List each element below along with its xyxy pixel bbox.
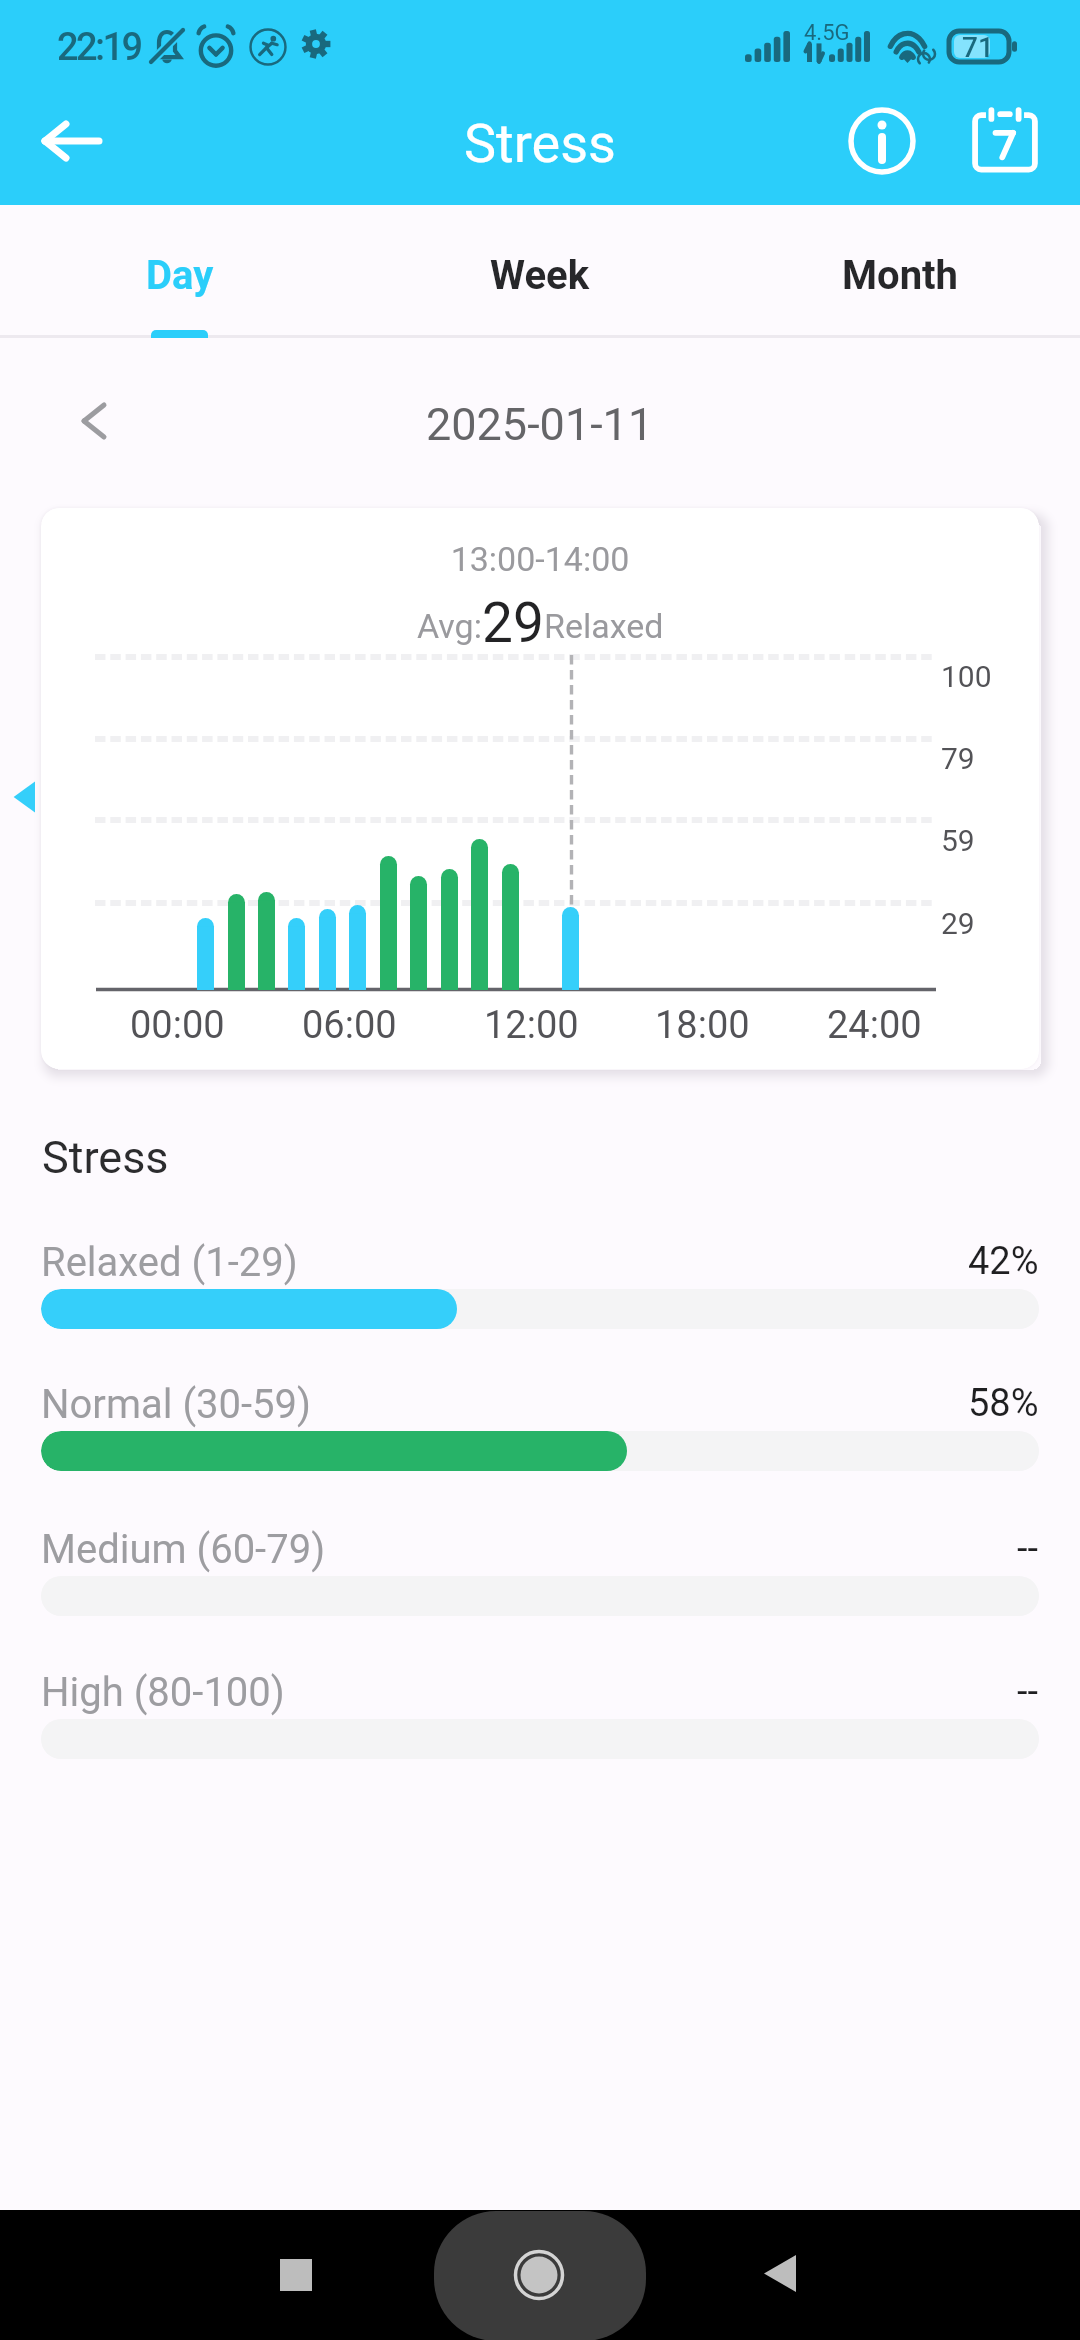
staticText: 18:00 [655,1003,750,1048]
staticText: Stress [464,112,616,175]
staticText: Day [146,252,214,299]
staticText: 29 [482,591,544,655]
staticText: Relaxed (1-29) [41,1239,968,1286]
button[interactable]: Normal (30-59) [41,1381,1039,1471]
button[interactable]: Medium (60-79) [41,1526,1039,1616]
staticText: 13:00-14:00 [41,539,1039,579]
staticText: -- [1017,1526,1039,1571]
staticText: Week [490,252,590,299]
staticText: High (80-100) [41,1669,1017,1716]
staticText: Relaxed [544,606,664,646]
staticText: 58% [968,1381,1039,1426]
button[interactable]: Month [720,205,1080,338]
staticText: 79 [941,741,975,776]
staticText: 59 [941,823,975,858]
button[interactable]: Recents [264,2243,328,2307]
staticText: Month [842,252,958,299]
staticText: Stress [42,1131,169,1184]
staticText: Medium (60-79) [41,1526,1017,1573]
button[interactable]: Info [837,96,927,186]
staticText: 29 [941,906,975,941]
staticText: 4.5G [804,20,850,46]
staticText: 100 [941,659,992,694]
staticText: 42% [968,1239,1039,1284]
staticText: 06:00 [302,1003,397,1048]
staticText: Avg: [417,606,482,646]
staticText: 00:00 [130,1003,225,1048]
button[interactable]: Home [434,2211,646,2340]
button[interactable]: Day [0,205,360,338]
button[interactable]: High (80-100) [41,1669,1039,1759]
button[interactable]: Back [748,2241,812,2305]
button[interactable]: Back [21,91,121,191]
staticText: 71 [962,31,994,64]
button[interactable]: Previous day [64,391,124,451]
staticText: Normal (30-59) [41,1381,968,1428]
button[interactable]: Week [360,205,720,338]
staticText: 2025-01-11 [426,398,654,451]
staticText: -- [1017,1669,1039,1714]
button[interactable]: Relaxed (1-29) [41,1239,1039,1329]
button[interactable]: Calendar [960,96,1050,186]
staticText: 22:19 [57,25,141,70]
staticText: 24:00 [827,1003,922,1048]
staticText: 12:00 [484,1003,579,1048]
